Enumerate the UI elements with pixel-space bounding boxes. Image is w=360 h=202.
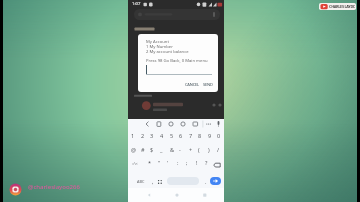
staticText: =\< [132,161,138,166]
staticText: + [189,146,193,153]
button[interactable]: ' [164,158,172,167]
staticText: 2 My account balance [146,49,189,55]
button[interactable]: @ [128,146,137,154]
staticText: 6 [179,132,183,139]
staticText: 7 [189,132,193,139]
button[interactable]: 9 [205,132,214,140]
staticText: ' [167,159,169,166]
staticText: 2 [141,132,145,139]
button[interactable] [319,3,356,10]
button[interactable]: ( [195,146,204,154]
button[interactable]: . [202,177,209,186]
button[interactable]: & [167,146,176,154]
staticText: ABC [137,179,145,184]
button[interactable]: _ [157,146,166,154]
staticText: , [152,178,154,185]
button[interactable]: + [186,146,195,154]
staticText: 4 [160,132,164,139]
staticText: ( [198,146,200,153]
staticText: @charleslayoo266 [28,183,80,191]
button[interactable]: $ [147,146,156,154]
button[interactable]: ) [205,146,214,154]
staticText: 3 [150,132,154,139]
button[interactable]: 0 [214,132,223,140]
button[interactable]: 5 [167,132,176,140]
staticText: @ [131,146,136,153]
button[interactable]: 3 [147,132,156,140]
button[interactable]: : [174,158,182,167]
button[interactable]: 7 [186,132,195,140]
staticText: 1 [131,132,135,139]
button[interactable]: , [149,177,157,186]
button[interactable]: / [214,146,223,154]
button[interactable]: =\< [130,159,141,168]
staticText: . [205,178,207,185]
staticText: 1 My Number [146,44,173,50]
staticText: SEND [203,82,213,87]
button[interactable]: ; [183,158,191,167]
button[interactable]: 8 [195,132,204,140]
button[interactable] [134,9,220,20]
button[interactable] [213,160,222,168]
button[interactable]: " [155,158,163,167]
button[interactable]: - [176,146,185,154]
staticText: 1:07 [132,1,141,7]
button[interactable] [210,177,221,185]
staticText: ; [186,159,188,166]
staticText: CANCEL [185,82,199,87]
staticText: - [179,146,181,153]
staticText: * [148,159,152,166]
staticText: 0 [217,132,221,139]
button[interactable]: 2 [138,132,147,140]
staticText: $ [150,146,154,153]
button[interactable]: # [138,146,147,154]
button[interactable]: * [145,158,153,167]
staticText: ! [196,159,198,166]
staticText: Press 98 Go Back, 0 Main menu [146,58,208,64]
button[interactable]: ? [202,158,210,167]
staticText: My Account [146,39,169,45]
button[interactable]: 4 [157,132,166,140]
button[interactable] [9,183,22,196]
button[interactable] [167,177,199,185]
staticText: ? [205,159,208,166]
staticText: " [158,159,161,166]
staticText: 9 [208,132,212,139]
staticText: 8 [198,132,202,139]
button[interactable]: CANCEL [182,80,200,89]
button[interactable]: ABC [135,177,148,186]
staticText: : [177,159,179,166]
staticText: # [141,146,145,153]
staticText: 5 [170,132,174,139]
staticText: _ [160,146,163,153]
button[interactable]: ! [193,158,201,167]
button[interactable]: SEND [200,80,214,89]
staticText: / [217,146,220,153]
staticText: & [170,146,175,153]
staticText: ) [208,146,210,153]
staticText: CHARLES LAYDC [329,4,356,9]
button[interactable]: 6 [176,132,185,140]
button[interactable]: 1 [128,132,137,140]
